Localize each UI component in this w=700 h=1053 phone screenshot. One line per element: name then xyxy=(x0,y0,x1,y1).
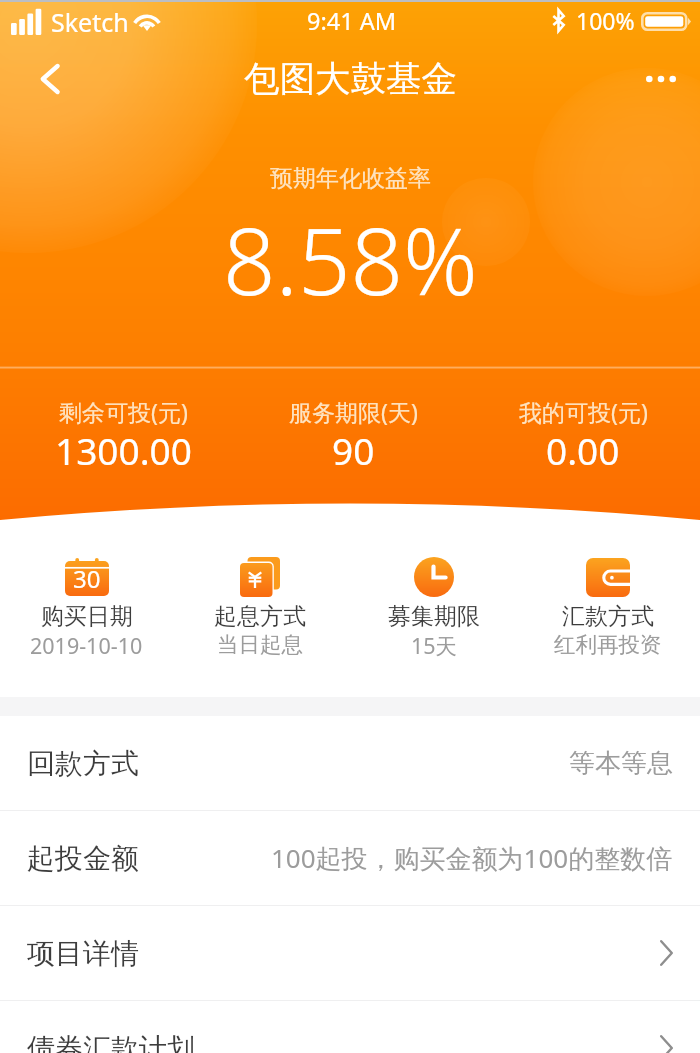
staticText: 2019-10-10 xyxy=(30,631,143,660)
button[interactable]: 债券汇款计划 xyxy=(0,1001,700,1053)
button[interactable]: More options xyxy=(638,56,684,102)
staticText: 服务期限(天) xyxy=(289,396,418,427)
button[interactable]: 回款方式 xyxy=(0,716,700,810)
staticText: 等本等息 xyxy=(569,747,673,780)
staticText: 起投金额 xyxy=(27,841,139,876)
staticText: 回款方式 xyxy=(27,746,139,781)
staticText: 购买日期 xyxy=(41,602,133,631)
staticText: 1300.00 xyxy=(55,425,192,475)
staticText: 汇款方式 xyxy=(562,602,654,631)
staticText: 90 xyxy=(332,425,375,475)
button[interactable]: 汇款方式 xyxy=(521,520,695,697)
staticText: Sketch xyxy=(51,5,129,39)
staticText: 预期年化收益率 xyxy=(270,164,431,193)
staticText: 0.00 xyxy=(546,425,620,475)
button[interactable]: 募集期限 xyxy=(347,520,521,697)
button[interactable]: 30 xyxy=(0,520,173,697)
staticText: 债券汇款计划 xyxy=(27,1031,195,1053)
staticText: 30 xyxy=(73,562,101,595)
staticText: 100% xyxy=(576,5,635,36)
button[interactable]: Back xyxy=(28,57,72,101)
staticText: 起息方式 xyxy=(214,602,306,631)
staticText: 红利再投资 xyxy=(554,631,662,658)
staticText: 剩余可投(元) xyxy=(59,396,188,427)
button[interactable]: 起投金额 xyxy=(0,811,700,905)
staticText: 9:41 AM xyxy=(307,5,397,37)
staticText: 8.58% xyxy=(223,197,478,322)
staticText: 募集期限 xyxy=(388,602,480,631)
staticText: 包图大鼓基金 xyxy=(244,57,457,102)
button[interactable]: 起息方式 xyxy=(173,520,347,697)
staticText: 100起投，购买金额为100的整数倍 xyxy=(271,840,673,876)
staticText: 我的可投(元) xyxy=(519,396,648,427)
staticText: 项目详情 xyxy=(27,936,139,971)
staticText: 当日起息 xyxy=(217,631,303,658)
button[interactable]: 项目详情 xyxy=(0,906,700,1000)
staticText: 15天 xyxy=(411,631,458,660)
